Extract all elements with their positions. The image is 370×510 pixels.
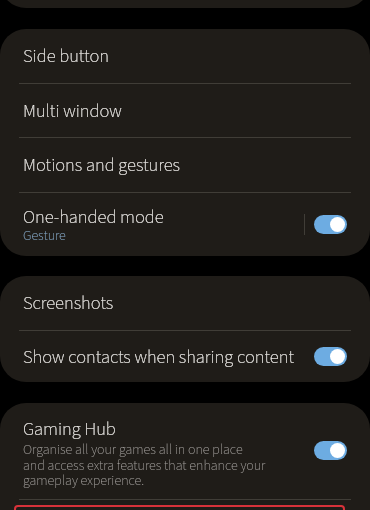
button[interactable]: Toggle setting — [314, 215, 347, 234]
button[interactable]: Screenshots — [0, 276, 370, 330]
button[interactable]: Show contacts when sharing content — [0, 331, 370, 382]
button[interactable]: Gaming Hub — [0, 403, 370, 499]
button[interactable]: Motions and gestures — [0, 138, 370, 192]
staticText: Show contacts when sharing content — [23, 344, 295, 370]
button[interactable]: Toggle setting — [314, 441, 347, 460]
button[interactable]: One-handed mode — [0, 193, 370, 256]
button[interactable]: Multi window — [0, 84, 370, 137]
button[interactable]: Toggle setting — [314, 347, 347, 366]
staticText: Gesture — [23, 226, 66, 246]
staticText: Side button — [23, 43, 110, 69]
staticText: Screenshots — [23, 290, 114, 316]
staticText: One-handed mode — [23, 204, 164, 230]
button[interactable]: Side button — [0, 29, 370, 83]
staticText: Motions and gestures — [23, 152, 180, 178]
staticText: Multi window — [23, 98, 122, 124]
button[interactable] — [14, 505, 345, 510]
staticText: Organise all your games all in one place… — [23, 440, 266, 491]
staticText: Gaming Hub — [23, 416, 116, 442]
